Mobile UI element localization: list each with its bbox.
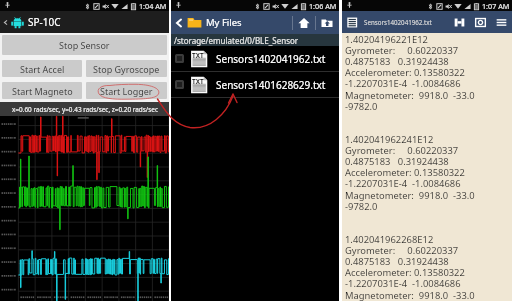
staticText: Accelerometer: 0.13580322 — [345, 66, 465, 79]
staticText: 1.402041962268E12 — [345, 233, 434, 246]
staticText: Accelerometer: 0.13580322 — [345, 166, 465, 179]
staticText: Start Accel — [20, 63, 65, 75]
staticText: -1.2207031E-4 -1.0084686 — [345, 177, 461, 190]
button[interactable]: Stop Sensor — [2, 35, 167, 55]
staticText: Stop Sensor — [59, 39, 110, 51]
button[interactable]: Up one level — [316, 17, 338, 29]
button[interactable]: Start Magneto — [2, 82, 82, 99]
staticText: Start Logger — [100, 85, 153, 97]
button[interactable]: TXT — [171, 72, 339, 97]
staticText: 1.40204196221E12 — [345, 33, 428, 46]
staticText: -9782.0 — [345, 100, 378, 113]
staticText: Magnetometer: 9918.0 -33.0 — [345, 189, 475, 202]
button[interactable]: Menu — [491, 17, 512, 28]
staticText: Magnetometer: 9918.0 -33.0 — [345, 289, 475, 301]
staticText: My Files — [206, 16, 242, 29]
button[interactable]: /storage/emulated/0/BLE_Sensor — [171, 34, 339, 46]
button[interactable]: TXT — [171, 46, 339, 71]
staticText: Sensors1402041962.txt — [364, 18, 432, 26]
staticText: -1.2207031E-4 -1.0084686 — [345, 277, 461, 290]
staticText: 1:04 AM — [139, 1, 167, 11]
staticText: TXT — [192, 77, 204, 86]
staticText: Accelerometer: 0.13580322 — [345, 266, 465, 279]
staticText: Sensors1402041962.txt — [216, 52, 326, 66]
button[interactable]: Home — [293, 17, 315, 29]
staticText: TXT — [192, 51, 204, 60]
staticText: Gyrometer: 0.60220337 — [345, 144, 459, 157]
staticText: 0.4875183 0.31924438 — [345, 255, 449, 268]
staticText: 1:06 AM — [309, 1, 337, 11]
button[interactable]: Stop Gyroscope — [86, 60, 167, 77]
button[interactable]: Start Logger — [86, 82, 167, 99]
button[interactable]: Start Accel — [2, 60, 82, 77]
staticText: Gyrometer: 0.60220337 — [345, 244, 459, 257]
staticText: -9782.0 — [345, 300, 378, 301]
staticText: x=0.60 rads/sec, y=0.43 rads/sec, z=0.20… — [12, 105, 158, 114]
staticText: 1:07 AM — [482, 1, 510, 11]
staticText: /storage/emulated/0/BLE_Sensor — [174, 35, 299, 46]
staticText: -1.2207031E-4 -1.0084686 — [345, 77, 461, 90]
staticText: 1.402041962241E12 — [345, 133, 434, 146]
staticText: Magnetometer: 9918.0 -33.0 — [345, 89, 475, 102]
button[interactable]: Screen capture — [470, 17, 491, 28]
staticText: -9782.0 — [345, 200, 378, 213]
staticText: Sensors1401628629.txt — [216, 78, 326, 92]
staticText: 0.4875183 0.31924438 — [345, 55, 449, 68]
button[interactable]: Back — [171, 18, 187, 28]
staticText: Gyrometer: 0.60220337 — [345, 44, 459, 57]
button[interactable]: SP-10C — [0, 11, 169, 33]
staticText: Stop Gyroscope — [93, 63, 160, 75]
button[interactable]: Find — [449, 17, 470, 28]
staticText: Start Magneto — [12, 85, 73, 97]
staticText: 0.4875183 0.31924438 — [345, 155, 449, 168]
staticText: SP-10C — [28, 15, 61, 29]
